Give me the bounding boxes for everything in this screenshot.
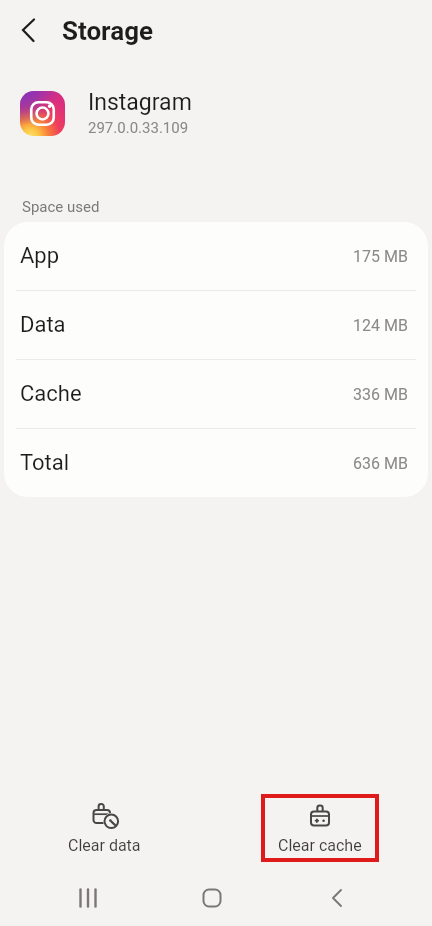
button[interactable] — [297, 870, 377, 926]
staticText: App — [20, 243, 60, 269]
staticText: Storage — [62, 16, 154, 46]
button[interactable]: Clear data — [29, 790, 179, 866]
staticText: 336 MB — [353, 385, 408, 404]
button[interactable]: Data — [4, 291, 428, 359]
staticText: 175 MB — [353, 247, 408, 266]
staticText: 636 MB — [353, 454, 408, 473]
button[interactable]: Clear cache — [261, 794, 379, 862]
staticText: 297.0.0.33.109 — [88, 119, 189, 137]
staticText: Clear cache — [278, 836, 362, 855]
button[interactable] — [48, 870, 128, 926]
staticText: 124 MB — [353, 316, 408, 335]
staticText: Clear data — [68, 836, 141, 855]
button[interactable]: Total — [4, 429, 428, 497]
button[interactable] — [6, 8, 50, 52]
staticText: Cache — [20, 381, 82, 407]
staticText: Data — [20, 312, 66, 338]
staticText: Total — [20, 450, 70, 476]
button[interactable] — [172, 870, 252, 926]
button[interactable]: Cache — [4, 360, 428, 428]
staticText: Instagram — [88, 89, 192, 116]
staticText: Space used — [22, 198, 100, 216]
button[interactable]: App — [4, 222, 428, 290]
